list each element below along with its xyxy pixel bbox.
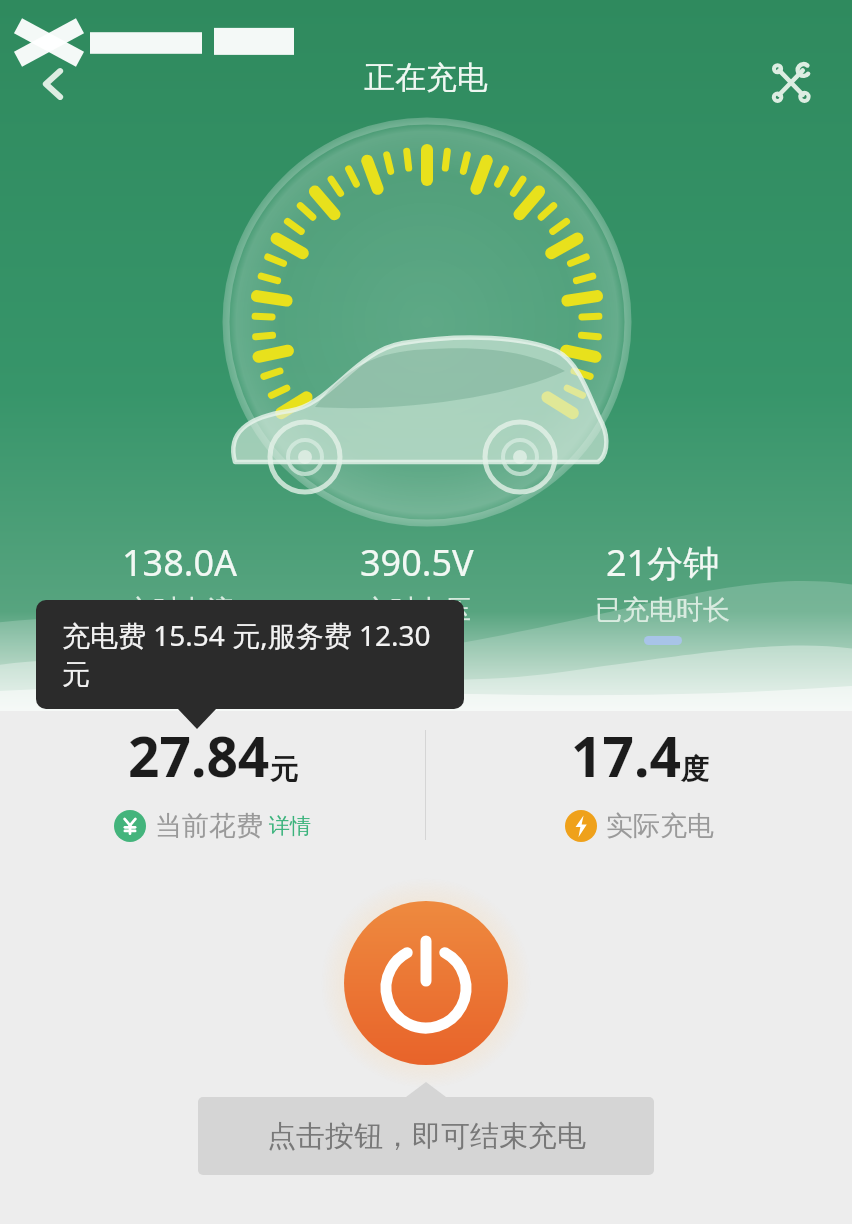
staticText: 21分钟 — [606, 538, 720, 587]
staticText: 详情 — [269, 813, 311, 839]
staticText: 17.4 — [571, 718, 681, 793]
staticText: 正在充电 — [364, 58, 488, 97]
staticText: 138.0A — [122, 538, 238, 587]
staticText: 实时电流 — [126, 593, 234, 627]
button[interactable]: 138.0A — [122, 538, 238, 627]
staticText: 充电费 15.54 元,服务费 12.30 元 — [62, 616, 438, 693]
staticText: 已充电时长 — [595, 593, 730, 627]
staticText: 390.5V — [360, 538, 474, 587]
button[interactable]: 返回 — [22, 52, 86, 116]
button[interactable]: 点击按钮，即可结束充电 — [198, 1097, 654, 1175]
staticText: 当前花费 — [155, 809, 263, 843]
button[interactable]: 设置 — [758, 50, 824, 116]
button[interactable]: 当前花费 — [114, 809, 311, 843]
button[interactable]: 结束充电 — [321, 878, 531, 1088]
staticText: 度 — [681, 752, 709, 787]
staticText: 点击按钮，即可结束充电 — [267, 1118, 586, 1155]
staticText: 实际充电 — [606, 809, 714, 843]
staticText: 实时电压 — [363, 593, 471, 627]
staticText: 元 — [270, 752, 298, 787]
staticText: 27.84 — [128, 718, 270, 793]
button[interactable]: 21分钟 — [595, 538, 730, 645]
button[interactable]: 390.5V — [360, 538, 474, 627]
